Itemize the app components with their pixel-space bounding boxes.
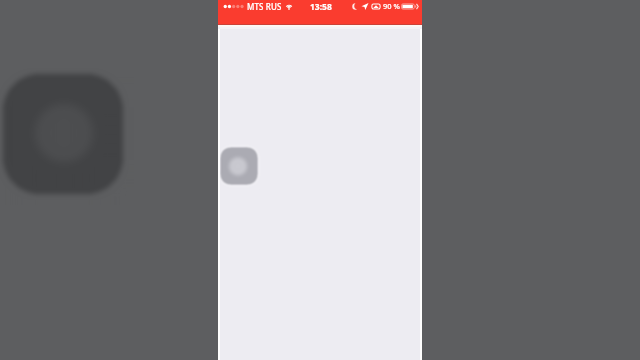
staticText: 90 % (383, 1, 400, 11)
staticText: MTS RUS (247, 1, 282, 12)
staticText: 13:58 (310, 1, 332, 13)
button[interactable]: Photo placeholder (218, 142, 263, 190)
